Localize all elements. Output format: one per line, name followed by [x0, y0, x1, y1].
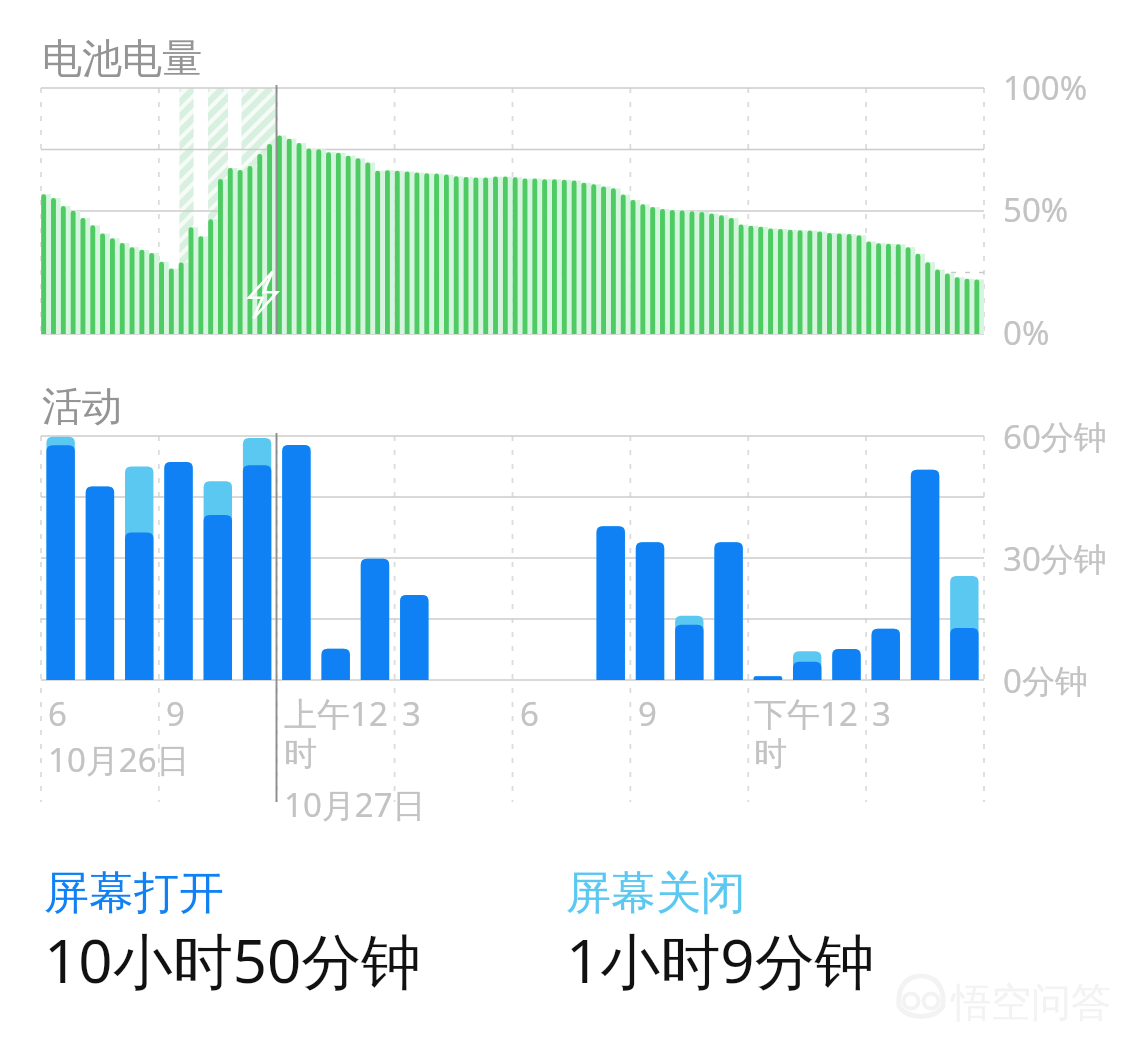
staticText: 0分钟 [1003, 658, 1088, 703]
staticText: 3 [872, 691, 891, 736]
staticText: 30分钟 [1003, 536, 1107, 581]
staticText: 屏幕打开 [44, 865, 224, 922]
staticText: 10月27日 [284, 782, 426, 827]
staticText: 电池电量 [42, 33, 202, 83]
staticText: 3 [402, 691, 421, 736]
staticText: 1小时9分钟 [566, 919, 875, 1001]
staticText: 9 [166, 691, 185, 736]
button[interactable]: 活动图表 [41, 436, 984, 680]
staticText: 10小时50分钟 [44, 919, 422, 1001]
button[interactable]: 屏幕打开 [44, 865, 224, 922]
staticText: 悟空问答 [951, 977, 1111, 1027]
button[interactable]: 10小时50分钟 [44, 919, 422, 1001]
staticText: 上午12 时 [284, 691, 388, 775]
button[interactable]: 电池电量图表 [41, 88, 984, 334]
staticText: 50% [1003, 187, 1069, 232]
staticText: 6 [48, 691, 67, 736]
staticText: 10月26日 [48, 737, 190, 782]
button[interactable]: 屏幕关闭 [566, 865, 746, 922]
staticText: 活动 [42, 381, 122, 431]
staticText: 屏幕关闭 [566, 865, 746, 922]
staticText: 6 [520, 691, 539, 736]
staticText: 下午12 时 [754, 691, 858, 775]
staticText: 0% [1003, 310, 1050, 355]
button[interactable]: 1小时9分钟 [566, 919, 875, 1001]
staticText: 60分钟 [1003, 414, 1107, 459]
staticText: 100% [1003, 65, 1088, 110]
staticText: 9 [638, 691, 657, 736]
